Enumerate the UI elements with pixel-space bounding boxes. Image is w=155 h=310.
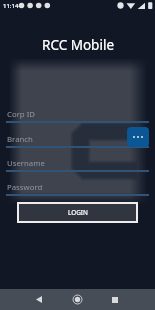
button[interactable]: Back (29, 289, 49, 310)
staticText: Corp ID (7, 109, 36, 120)
button[interactable]: LOGIN (17, 202, 138, 223)
button[interactable]: Choose branch (127, 127, 149, 147)
staticText: Password (7, 182, 43, 193)
button[interactable]: Recent apps (105, 289, 125, 310)
button[interactable]: Home (67, 289, 87, 310)
staticText: RCC Mobile (42, 36, 114, 54)
staticText: LOGIN (68, 208, 88, 217)
staticText: Username (7, 158, 45, 169)
staticText: Branch (7, 134, 33, 145)
staticText: 11:14 (3, 2, 19, 10)
